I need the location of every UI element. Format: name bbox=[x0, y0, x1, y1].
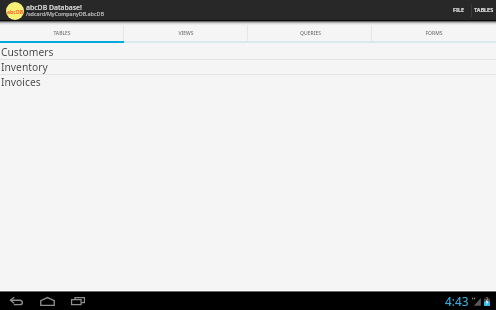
button[interactable]: Inventory bbox=[0, 60, 496, 75]
button[interactable]: VIEWS bbox=[124, 25, 248, 41]
staticText: 4:43 bbox=[445, 293, 469, 309]
staticText: TABLES bbox=[474, 6, 494, 14]
button[interactable]: Back bbox=[6, 292, 26, 310]
button[interactable]: TABLES bbox=[0, 25, 124, 41]
staticText: Inventory bbox=[1, 60, 48, 74]
button[interactable]: Recent apps bbox=[68, 292, 88, 310]
staticText: abcDB Database! bbox=[26, 3, 82, 12]
staticText: FILE bbox=[453, 6, 465, 14]
button[interactable]: FILE bbox=[440, 0, 468, 20]
button[interactable]: TABLES bbox=[469, 0, 496, 20]
staticText: VIEWS bbox=[178, 30, 194, 37]
button[interactable]: Home bbox=[37, 292, 57, 310]
staticText: Invoices bbox=[1, 75, 41, 89]
staticText: Customers bbox=[1, 45, 54, 59]
staticText: /sdcard/MyCompanyDB.abcDB bbox=[26, 10, 104, 17]
staticText: FORMS bbox=[425, 30, 443, 37]
button[interactable]: QUERIES bbox=[248, 25, 372, 41]
button[interactable]: Invoices bbox=[0, 75, 496, 89]
staticText: abcDB bbox=[7, 9, 24, 16]
button[interactable]: FORMS bbox=[372, 25, 496, 41]
staticText: QUERIES bbox=[300, 30, 321, 37]
staticText: TABLES bbox=[53, 30, 71, 37]
button[interactable]: Customers bbox=[0, 45, 496, 60]
